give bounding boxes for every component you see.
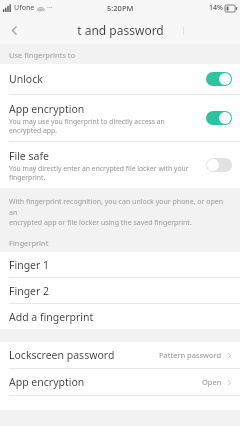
staticText: App encryption <box>9 375 202 389</box>
button[interactable]: App encryption <box>0 95 240 141</box>
staticText: Fingerprint <box>9 238 49 248</box>
staticText: 5:20PM <box>107 3 134 13</box>
button[interactable]: Off <box>206 158 232 172</box>
button[interactable]: Finger 1 <box>0 252 240 277</box>
button[interactable]: File safe <box>0 142 240 188</box>
button[interactable]: Back <box>0 16 28 44</box>
staticText: Finger 1 <box>9 258 50 272</box>
staticText: Add a fingerprint <box>9 310 94 324</box>
staticText: 14% <box>209 3 223 13</box>
button[interactable]: Finger 2 <box>0 278 240 303</box>
button[interactable]: Lockscreen password <box>0 342 240 368</box>
staticText: You may directly enter an encrypted file… <box>9 164 189 182</box>
button[interactable]: On <box>206 72 232 86</box>
button[interactable]: Add a fingerprint <box>0 304 240 329</box>
staticText: File safe <box>9 149 49 163</box>
staticText: Ufone <box>14 3 35 13</box>
staticText: Finger 2 <box>9 284 50 298</box>
staticText: t and password <box>77 22 164 38</box>
staticText: Open <box>202 377 222 387</box>
button[interactable]: Unlock <box>0 64 240 94</box>
staticText: You may use you fingerprint to directly … <box>9 117 165 135</box>
staticText: App encryption <box>9 102 85 116</box>
staticText: Lockscreen password <box>9 348 159 362</box>
staticText: Use fingerprints to <box>9 50 76 60</box>
staticText: With fingerprint recognition, you can un… <box>9 197 231 227</box>
staticText: Unlock <box>9 72 43 86</box>
button[interactable]: App encryption <box>0 369 240 395</box>
button[interactable]: On <box>206 111 232 125</box>
staticText: Pattern password <box>159 350 222 360</box>
staticText: ··· <box>47 3 53 13</box>
